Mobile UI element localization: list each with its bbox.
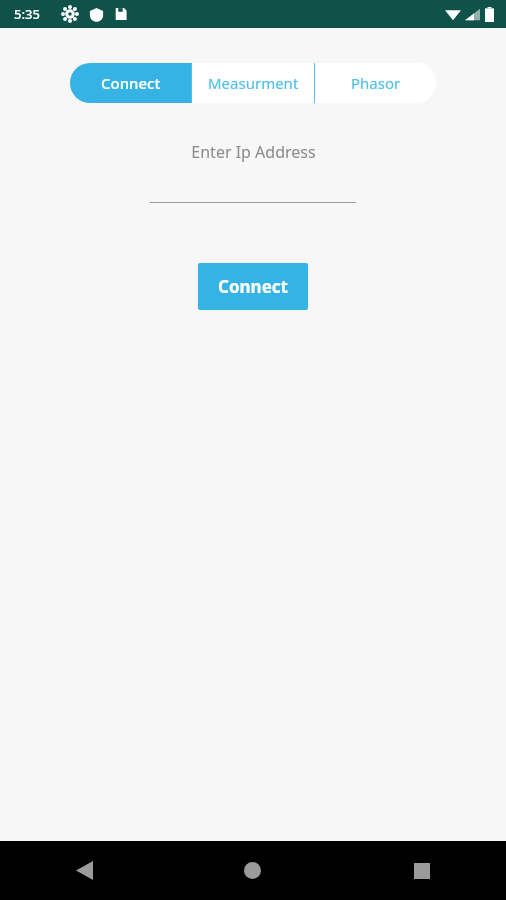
button[interactable]: Connect (198, 263, 308, 310)
button[interactable]: Home (168, 841, 337, 900)
button[interactable]: Recent apps (337, 841, 506, 900)
staticText: Phasor (351, 73, 401, 93)
button[interactable]: Phasor (315, 63, 436, 103)
staticText: 5:35 (14, 5, 40, 23)
button[interactable]: Back (0, 841, 168, 900)
staticText: Enter Ip Address (191, 141, 316, 163)
staticText: Connect (101, 73, 161, 93)
staticText: Connect (218, 275, 288, 298)
button[interactable]: Measurment (192, 63, 314, 103)
button[interactable]: Connect (70, 63, 191, 103)
staticText: Measurment (208, 73, 299, 93)
